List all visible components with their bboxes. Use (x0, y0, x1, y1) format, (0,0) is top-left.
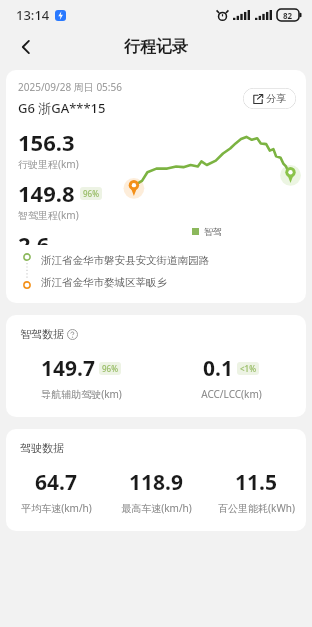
staticText: 行程记录 (124, 37, 188, 57)
staticText: 智驾数据 (20, 327, 64, 341)
staticText: 智驾 (204, 226, 222, 237)
staticText: 最高车速(km/h) (121, 501, 192, 515)
staticText: 驾驶数据 (20, 441, 64, 455)
button[interactable]: 分享 (243, 88, 296, 109)
staticText: 导航辅助驾驶(km) (41, 387, 122, 401)
staticText: 11.5 (235, 468, 277, 497)
staticText: 平均车速(km/h) (21, 501, 92, 515)
staticText: 13:14 (16, 6, 50, 24)
staticText: 分享 (266, 92, 286, 105)
staticText: 浙江省金华市磐安县安文街道南园路 (41, 254, 209, 267)
staticText: 2.6 (18, 229, 50, 245)
staticText: 2025/09/28 周日 05:56 (18, 80, 122, 94)
staticText: 96% (83, 188, 99, 199)
staticText: 百公里能耗(kWh) (218, 501, 295, 515)
button[interactable]: Back (10, 31, 42, 63)
staticText: 行驶里程(km) (18, 157, 79, 171)
staticText: 64.7 (35, 468, 77, 497)
button[interactable]: Info (67, 329, 78, 340)
staticText: 0.1 (203, 354, 233, 383)
staticText: 149.8 (18, 178, 75, 208)
staticText: 156.3 (18, 127, 75, 157)
staticText: 浙江省金华市婺城区莘畈乡 (41, 276, 167, 289)
staticText: ACC/LCC(km) (201, 387, 262, 401)
staticText: 82 (283, 10, 293, 21)
staticText: 智驾里程(km) (18, 208, 79, 222)
staticText: <1% (240, 363, 256, 374)
staticText: 118.9 (129, 468, 183, 497)
staticText: G6 浙GA***15 (18, 99, 106, 117)
staticText: 96% (102, 363, 118, 374)
staticText: 149.7 (41, 354, 95, 383)
